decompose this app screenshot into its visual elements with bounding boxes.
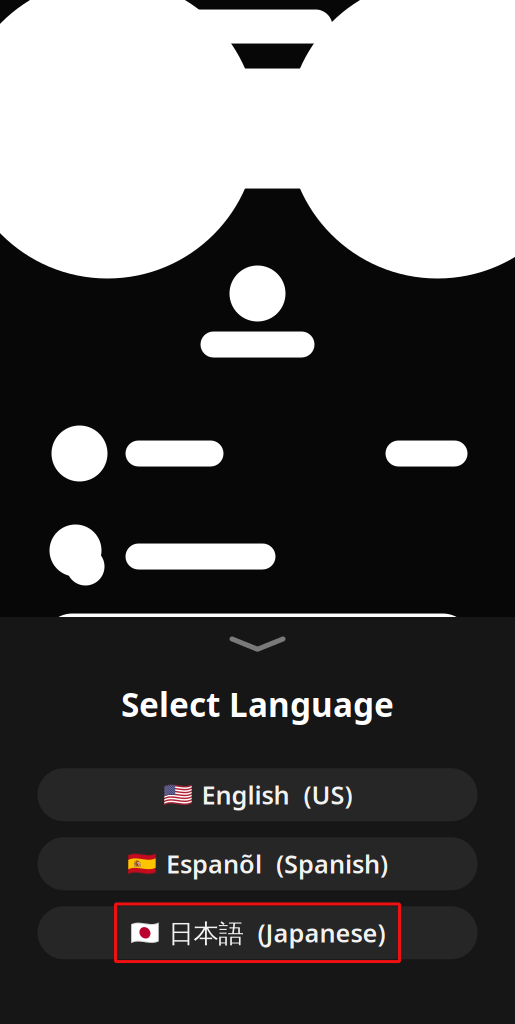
button[interactable]: 🇯🇵 — [37, 906, 477, 959]
staticText: 🇪🇸 — [127, 850, 157, 877]
button[interactable]: 🇪🇸 — [37, 837, 477, 890]
button[interactable]: 🇺🇸 — [37, 768, 477, 821]
staticText: 日本語 (Japanese) — [168, 916, 385, 949]
staticText: Espanõl (Spanish) — [166, 847, 388, 880]
staticText: English (US) — [201, 778, 352, 811]
staticText: Select Language — [121, 682, 394, 726]
staticText: 🇺🇸 — [162, 781, 192, 808]
staticText: 🇯🇵 — [129, 919, 159, 946]
